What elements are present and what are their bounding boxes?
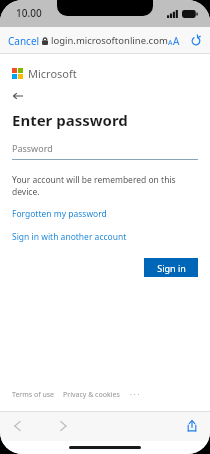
staticText: A: [173, 34, 180, 48]
button[interactable]: Forgotten my password: [12, 207, 107, 221]
button[interactable]: Share: [184, 417, 200, 435]
staticText: 10.00: [16, 6, 42, 20]
button[interactable]: Sign in: [144, 258, 198, 277]
staticText: Forgotten my password: [12, 208, 107, 220]
staticText: Microsoft: [28, 66, 77, 81]
button[interactable]: Sign in with another account: [12, 230, 127, 244]
staticText: Privacy & cookies: [63, 390, 120, 400]
button[interactable]: Forward: [56, 417, 70, 435]
staticText: Sign in: [157, 262, 186, 274]
staticText: login.microsoftonline.com: [51, 34, 168, 47]
button[interactable]: Back: [12, 90, 24, 102]
button[interactable]: Password: [12, 142, 198, 160]
button[interactable]: More: [128, 387, 142, 403]
button[interactable]: Text size: [166, 31, 182, 51]
button[interactable]: Cancel: [0, 30, 46, 52]
staticText: Sign in with another account: [12, 231, 127, 243]
staticText: Password: [12, 142, 53, 154]
button[interactable]: Back: [10, 417, 24, 435]
staticText: A: [168, 38, 173, 48]
staticText: · · ·: [130, 390, 140, 400]
button[interactable]: Reload: [189, 34, 203, 48]
button[interactable]: Privacy & cookies: [63, 390, 120, 400]
staticText: Terms of use: [12, 390, 55, 400]
staticText: Enter password: [12, 110, 128, 130]
staticText: Your account will be remembered on this …: [12, 174, 198, 198]
button[interactable]: Terms of use: [12, 390, 55, 400]
